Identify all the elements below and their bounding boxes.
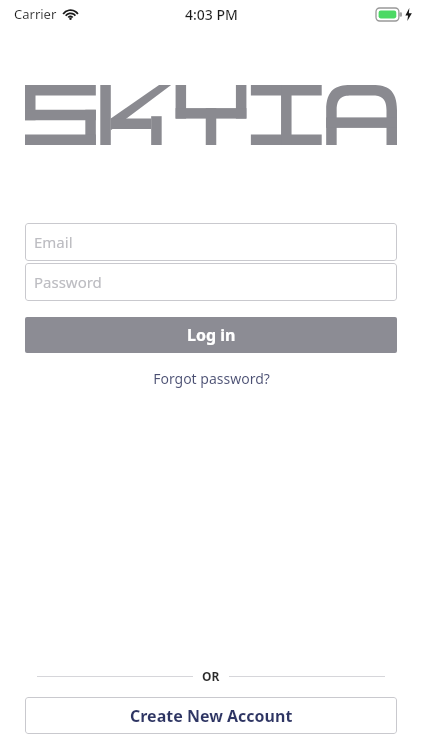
staticText: OR	[202, 668, 220, 684]
staticText: Log in	[187, 324, 236, 346]
staticText: Carrier	[14, 5, 57, 23]
button[interactable]: Create New Account	[25, 697, 397, 734]
button[interactable]: Forgot password?	[25, 369, 397, 388]
staticText: Email	[34, 232, 73, 252]
button[interactable]: Password	[25, 263, 397, 301]
staticText: Create New Account	[130, 705, 293, 727]
button[interactable]: Email	[25, 223, 397, 261]
staticText: 4:03 PM	[185, 5, 238, 24]
button[interactable]: Log in	[25, 317, 397, 353]
staticText: Password	[34, 272, 102, 292]
staticText: Forgot password?	[153, 369, 270, 388]
